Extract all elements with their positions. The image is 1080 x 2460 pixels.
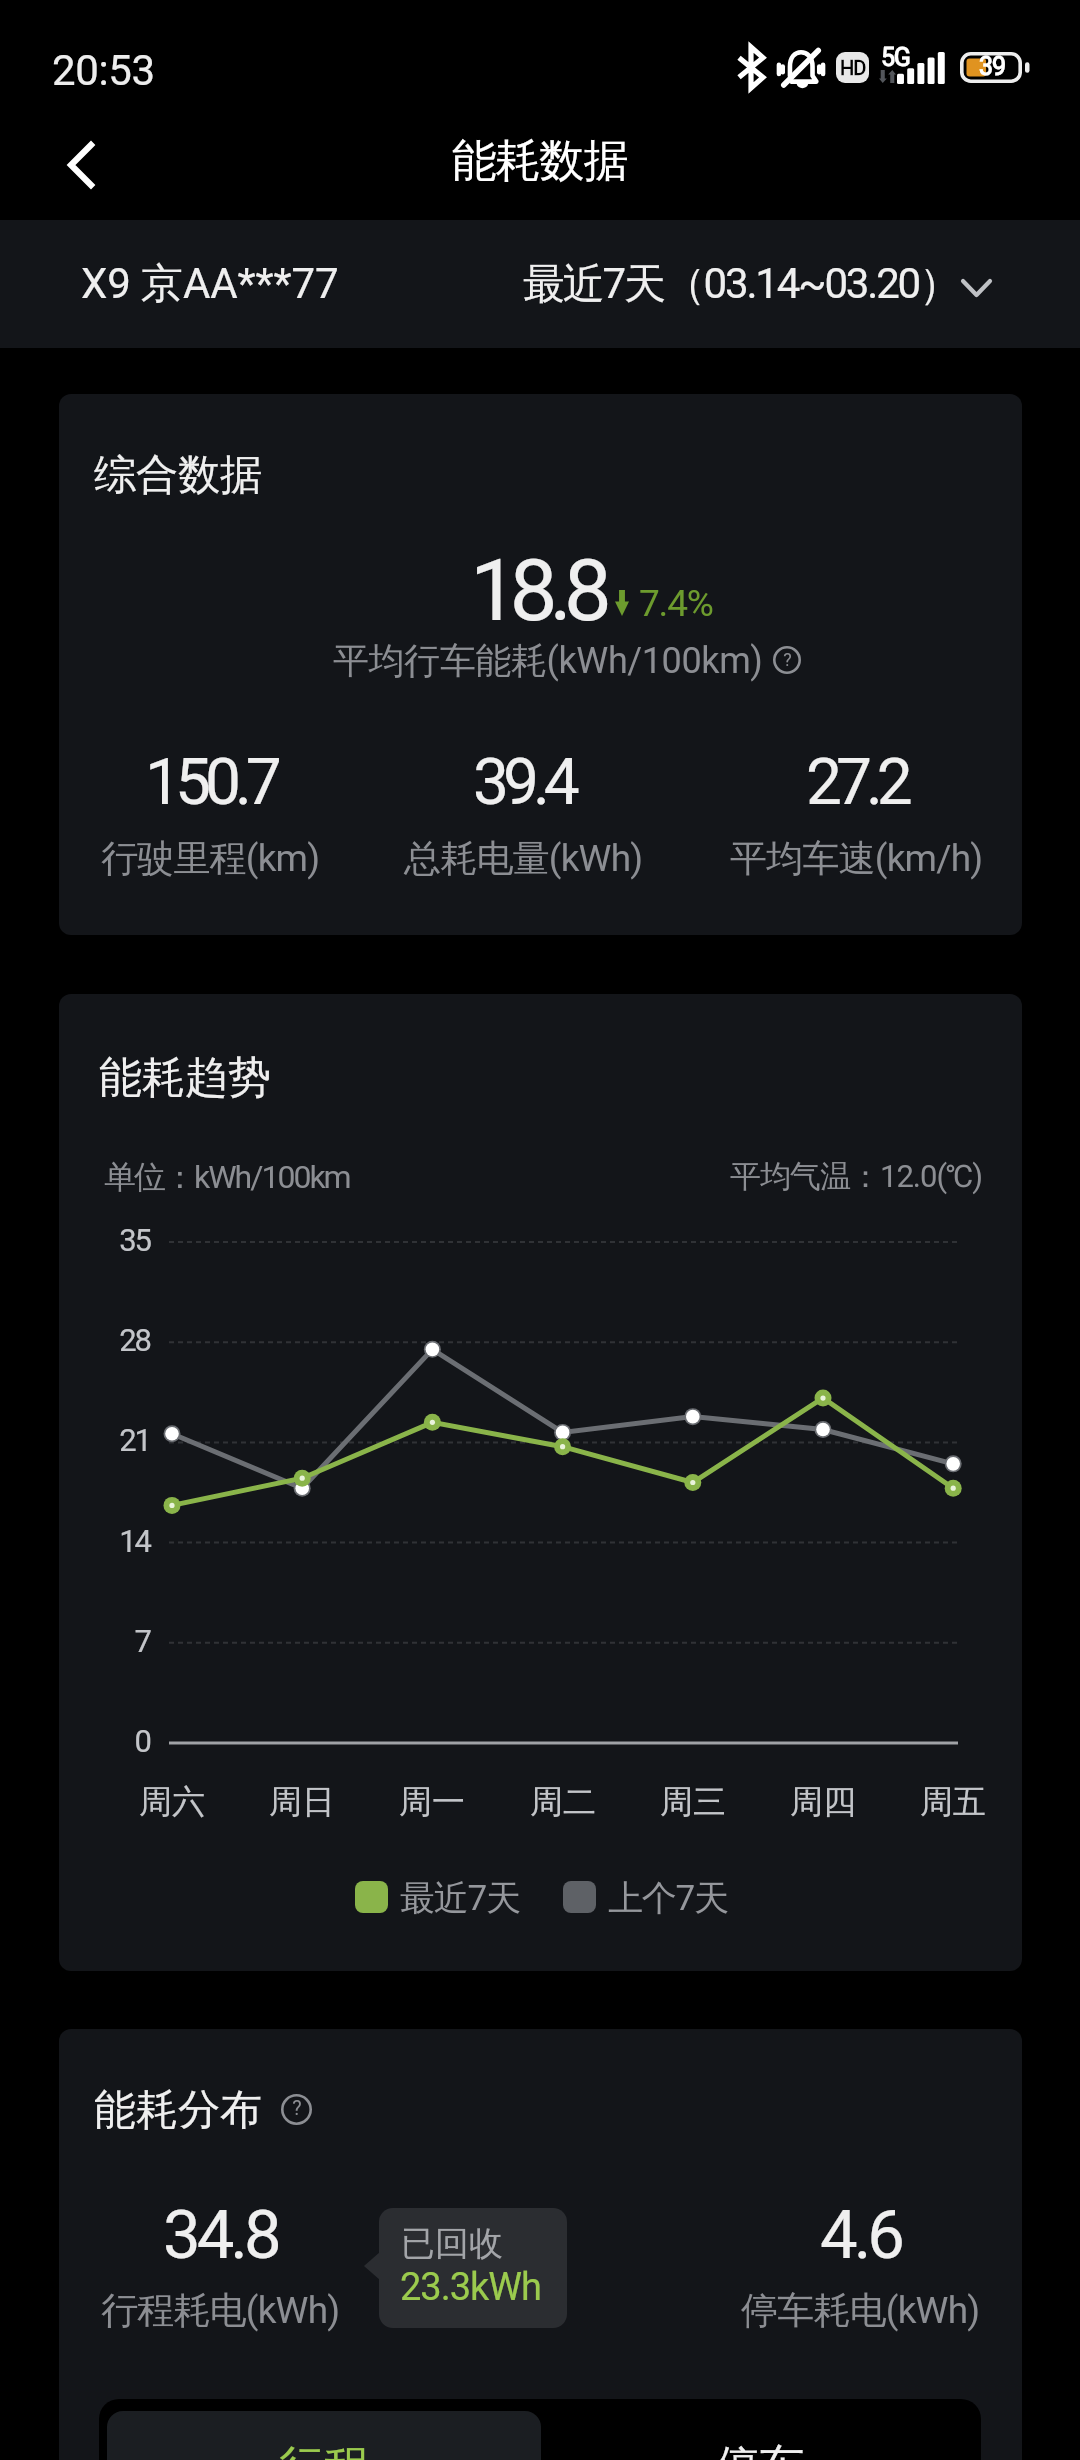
staticText: 综合数据 bbox=[94, 449, 262, 502]
staticText: 150.7 bbox=[145, 745, 276, 820]
staticText: 21 bbox=[59, 1422, 150, 1458]
button[interactable]: Help bbox=[773, 646, 801, 674]
staticText: 周六 bbox=[107, 1781, 237, 1823]
staticText: 5G bbox=[881, 43, 910, 72]
staticText: 平均气温：12.0(℃) bbox=[730, 1157, 983, 1196]
staticText: 周一 bbox=[367, 1781, 497, 1823]
staticText: 单位：kWh/100km bbox=[104, 1157, 350, 1197]
staticText: 行驶里程(km) bbox=[101, 835, 320, 882]
staticText: 35 bbox=[59, 1222, 150, 1258]
staticText: 总耗电量(kWh) bbox=[404, 835, 643, 882]
staticText: 周四 bbox=[758, 1781, 888, 1823]
staticText: 停车 bbox=[715, 2439, 805, 2460]
staticText: 18.8 bbox=[470, 541, 604, 641]
button[interactable]: 已回收 bbox=[379, 2208, 567, 2328]
staticText: 最近7天 bbox=[400, 1876, 520, 1920]
staticText: X9 京AA***77 bbox=[81, 258, 339, 311]
staticText: 39.4 bbox=[473, 745, 574, 820]
button[interactable]: X9 京AA***77 bbox=[59, 242, 361, 327]
button[interactable]: Help bbox=[281, 2094, 312, 2125]
button[interactable]: Back bbox=[26, 110, 136, 220]
staticText: 周三 bbox=[628, 1781, 758, 1823]
staticText: 14 bbox=[59, 1523, 150, 1559]
staticText: 已回收 bbox=[401, 2222, 503, 2265]
staticText: 4.6 bbox=[820, 2196, 901, 2275]
staticText: ? bbox=[292, 2097, 302, 2120]
staticText: 7.4% bbox=[639, 582, 713, 625]
staticText: 27.2 bbox=[806, 745, 907, 820]
button[interactable]: 停车 bbox=[547, 2411, 973, 2460]
staticText: 能耗分布 bbox=[94, 2084, 262, 2137]
staticText: 停车耗电(kWh) bbox=[741, 2287, 980, 2334]
staticText: 34.8 bbox=[163, 2196, 278, 2275]
staticText: 39 bbox=[979, 52, 1006, 81]
staticText: 平均行车能耗(kWh/100km) bbox=[333, 638, 763, 683]
staticText: 7 bbox=[59, 1623, 150, 1659]
staticText: 23.3kWh bbox=[400, 2265, 541, 2310]
staticText: 行程耗电(kWh) bbox=[101, 2287, 340, 2334]
staticText: 周五 bbox=[888, 1781, 1018, 1823]
staticText: 能耗趋势 bbox=[99, 1051, 271, 1105]
staticText: 上个7天 bbox=[608, 1876, 728, 1920]
staticText: 28 bbox=[59, 1322, 150, 1358]
staticText: HD bbox=[840, 56, 866, 79]
staticText: ? bbox=[783, 649, 792, 670]
staticText: 行程 bbox=[279, 2439, 369, 2460]
button[interactable]: 最近7天（03.14~03.20） bbox=[503, 242, 1012, 327]
button[interactable]: 行程 bbox=[107, 2411, 541, 2460]
staticText: 周二 bbox=[498, 1781, 628, 1823]
staticText: 20:53 bbox=[52, 46, 155, 95]
staticText: 能耗数据 bbox=[452, 133, 628, 190]
staticText: 周日 bbox=[237, 1781, 367, 1823]
staticText: 平均车速(km/h) bbox=[730, 835, 983, 882]
staticText: 最近7天（03.14~03.20） bbox=[523, 258, 959, 311]
staticText: 0 bbox=[59, 1723, 150, 1759]
